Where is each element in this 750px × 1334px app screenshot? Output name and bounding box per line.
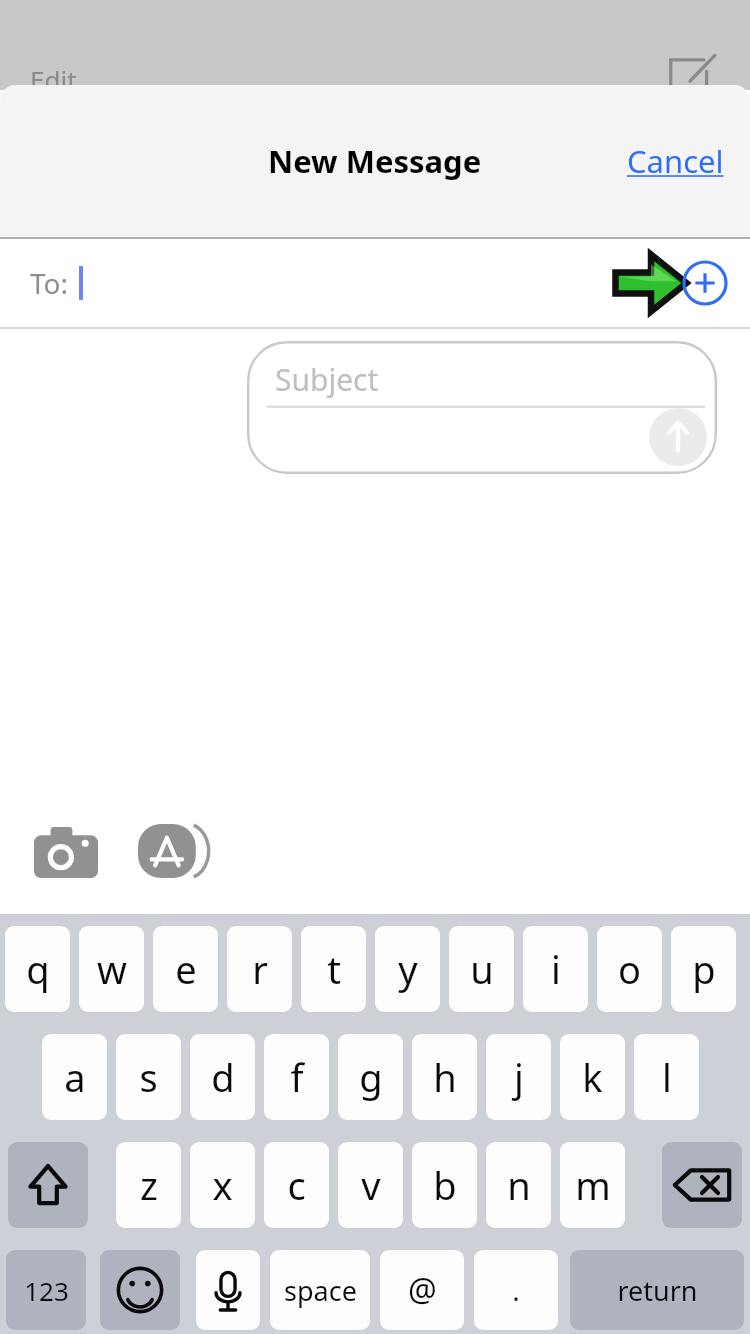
button[interactable]: r [227, 926, 292, 1012]
staticText: h [433, 1051, 457, 1103]
staticText: New Message [268, 140, 482, 182]
button[interactable]: Shift [8, 1142, 88, 1228]
button[interactable]: App Store [138, 821, 214, 881]
staticText: Subject [275, 359, 379, 400]
button[interactable]: u [449, 926, 514, 1012]
button[interactable]: c [264, 1142, 329, 1228]
button[interactable]: g [338, 1034, 403, 1120]
button[interactable]: h [412, 1034, 477, 1120]
button[interactable]: Cancel [619, 130, 732, 192]
button[interactable]: b [412, 1142, 477, 1228]
staticText: a [64, 1051, 86, 1103]
button[interactable]: d [190, 1034, 255, 1120]
staticText: Edit [30, 62, 77, 97]
button[interactable]: m [560, 1142, 625, 1228]
button[interactable]: k [560, 1034, 625, 1120]
staticText: Cancel [627, 140, 724, 182]
staticText: g [359, 1051, 383, 1103]
button[interactable]: . [474, 1250, 558, 1330]
button[interactable]: Send [649, 408, 707, 466]
button[interactable]: e [153, 926, 218, 1012]
staticText: b [433, 1159, 457, 1211]
button[interactable]: space [270, 1250, 370, 1330]
button[interactable]: n [486, 1142, 551, 1228]
staticText: e [175, 943, 197, 995]
button[interactable]: Add contact [682, 260, 728, 306]
button[interactable]: x [190, 1142, 255, 1228]
button[interactable]: z [116, 1142, 181, 1228]
staticText: q [26, 943, 50, 995]
button[interactable]: Backspace [662, 1142, 742, 1228]
button[interactable]: i [523, 926, 588, 1012]
staticText: u [470, 943, 494, 995]
button[interactable]: o [597, 926, 662, 1012]
staticText: c [287, 1159, 306, 1211]
staticText: s [139, 1051, 158, 1103]
button[interactable]: p [671, 926, 736, 1012]
staticText: t [327, 943, 341, 995]
staticText: x [212, 1159, 233, 1211]
staticText: return [617, 1272, 698, 1309]
button[interactable]: Subject [247, 341, 717, 474]
staticText: m [575, 1159, 611, 1211]
button[interactable]: w [79, 926, 144, 1012]
staticText: @ [408, 1268, 437, 1312]
staticText: v [361, 1159, 381, 1211]
staticText: n [507, 1159, 531, 1211]
button[interactable]: j [486, 1034, 551, 1120]
button[interactable]: 123 [6, 1250, 86, 1330]
button[interactable]: v [338, 1142, 403, 1228]
staticText: y [398, 943, 418, 995]
button[interactable]: t [301, 926, 366, 1012]
staticText: 123 [24, 1273, 69, 1308]
staticText: o [618, 943, 641, 995]
staticText: To: [30, 264, 69, 302]
button[interactable]: Emoji [100, 1250, 180, 1330]
staticText: d [211, 1051, 235, 1103]
button[interactable]: s [116, 1034, 181, 1120]
staticText: p [692, 943, 716, 995]
staticText: f [290, 1051, 304, 1103]
button[interactable]: @ [380, 1250, 464, 1330]
staticText: i [551, 943, 561, 995]
staticText: j [514, 1051, 524, 1103]
staticText: w [97, 943, 127, 995]
button[interactable]: f [264, 1034, 329, 1120]
staticText: space [284, 1272, 357, 1309]
button[interactable]: a [42, 1034, 107, 1120]
button[interactable]: return [570, 1250, 744, 1330]
button[interactable]: Camera [34, 826, 98, 878]
button[interactable]: q [5, 926, 70, 1012]
staticText: l [662, 1051, 672, 1103]
staticText: r [252, 943, 268, 995]
staticText: z [140, 1159, 158, 1211]
staticText: k [582, 1051, 603, 1103]
button[interactable]: y [375, 926, 440, 1012]
button[interactable]: Dictate [196, 1250, 260, 1330]
staticText: . [512, 1271, 520, 1309]
button[interactable]: l [634, 1034, 699, 1120]
